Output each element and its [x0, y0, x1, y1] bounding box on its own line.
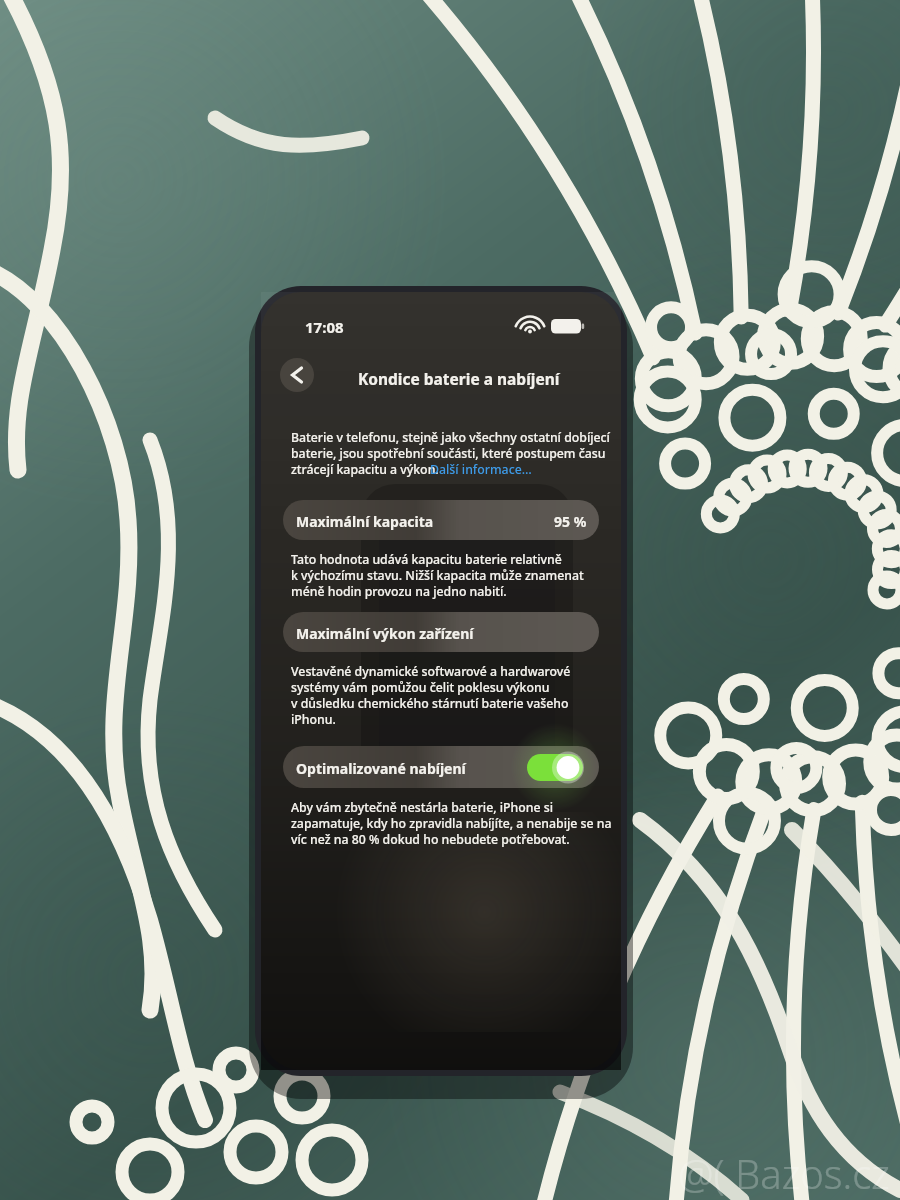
button[interactable] — [283, 500, 599, 540]
button[interactable] — [283, 612, 599, 652]
button[interactable] — [283, 746, 599, 788]
button[interactable]: Zpět — [279, 357, 316, 394]
